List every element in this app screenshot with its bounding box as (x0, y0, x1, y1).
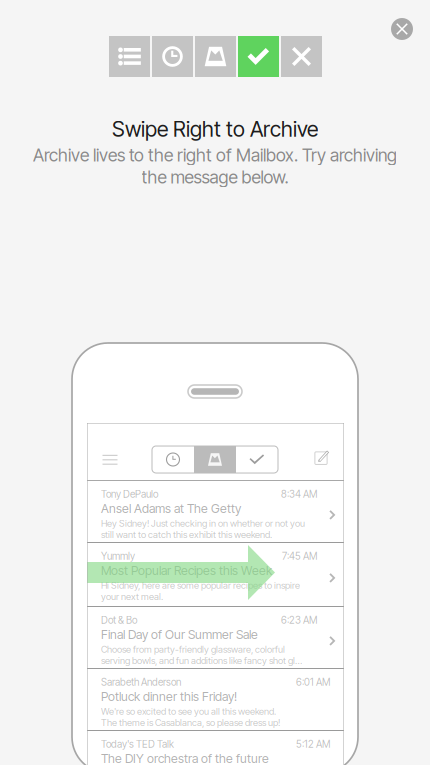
staticText: The DIY orchestra of the future (101, 751, 269, 765)
staticText: Hi Sidney, here are some popular recipes… (101, 580, 300, 591)
button[interactable]: Trash (281, 36, 322, 77)
staticText: 6:01 AM (296, 676, 330, 688)
staticText: Swipe Right to Archive (112, 116, 318, 142)
staticText: 8:34 AM (281, 488, 317, 500)
staticText: Tony DePaulo (101, 488, 158, 500)
staticText: Potluck dinner this Friday! (101, 689, 237, 704)
button[interactable]: Dot & Bo (87, 607, 344, 668)
staticText: Sarabeth Anderson (101, 676, 181, 688)
button[interactable]: Yummly (87, 543, 344, 606)
button[interactable]: Later (152, 446, 194, 473)
button[interactable]: Close (384, 11, 420, 47)
button[interactable]: Today's TED Talk (87, 731, 344, 765)
staticText: serving bowls, and fun additions like fa… (101, 655, 302, 666)
staticText: still want to catch this exhibit this we… (101, 529, 272, 540)
button[interactable]: Menu (95, 447, 125, 473)
staticText: 5:12 AM (296, 738, 330, 750)
button[interactable]: Later (152, 36, 193, 77)
staticText: Yummly (101, 550, 135, 562)
staticText: 7:45 AM (282, 550, 317, 562)
staticText: Choose from party-friendly glassware, co… (101, 644, 285, 655)
button[interactable]: Tony DePaulo (87, 481, 344, 542)
staticText: Archive lives to the right of Mailbox. T… (33, 144, 397, 166)
button[interactable]: Inbox (195, 36, 236, 77)
staticText: 6:23 AM (281, 614, 317, 626)
button[interactable]: Inbox (194, 446, 236, 473)
staticText: Dot & Bo (101, 614, 137, 626)
button[interactable]: Sarabeth Anderson (87, 669, 344, 730)
button[interactable]: Archive (236, 446, 278, 473)
staticText: The theme is Casablanca, so please dress… (101, 717, 280, 728)
staticText: Today's TED Talk (101, 738, 174, 750)
staticText: We're so excited to see you all this wee… (101, 706, 276, 717)
button[interactable]: All lists (109, 36, 150, 77)
staticText: Hey Sidney! Just checking in on whether … (101, 518, 305, 529)
staticText: Final Day of Our Summer Sale (101, 627, 258, 642)
staticText: your next meal. (101, 591, 163, 602)
button[interactable]: Compose (309, 444, 333, 468)
staticText: Ansel Adams at The Getty (101, 501, 241, 516)
staticText: Most Popular Recipes this Week (101, 563, 272, 578)
staticText: the message below. (141, 166, 288, 188)
button[interactable]: Archive (238, 36, 279, 77)
